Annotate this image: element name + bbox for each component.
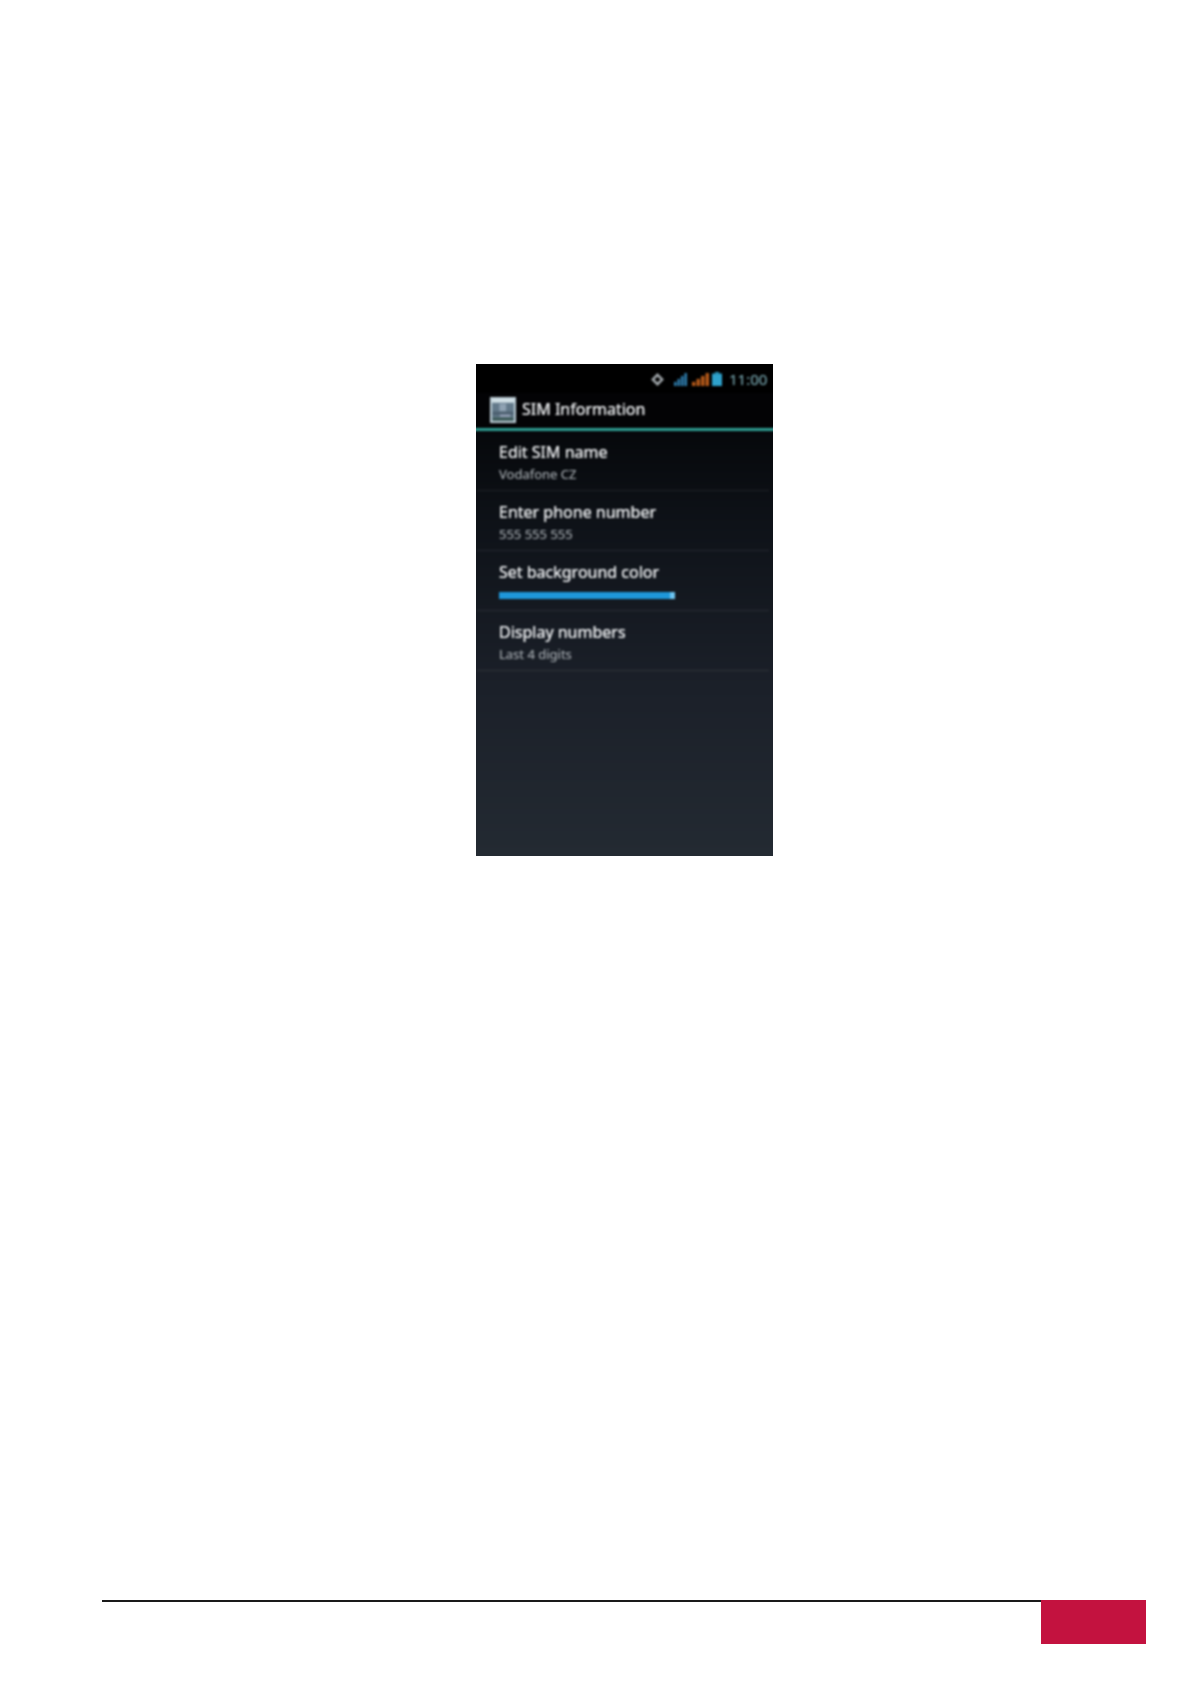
other: Auto rotate [652,374,663,385]
button[interactable]: Set background color [476,551,773,610]
staticText: Vodafone CZ [499,465,577,483]
other: Signal strength [692,373,709,386]
button[interactable]: Display numbers [476,611,773,670]
other: Battery [712,372,722,386]
staticText: SIM Information [522,398,646,420]
other: SIM Information app icon [490,397,516,423]
staticText: 11:00 [729,369,768,389]
staticText: Last 4 digits [499,645,572,663]
staticText: Display numbers [499,621,626,643]
button[interactable]: SIM Information app icon [476,393,773,428]
staticText: 555 555 555 [499,525,573,543]
staticText: Enter phone number [499,501,657,523]
staticText: Edit SIM name [499,441,608,463]
other: Signal strength [674,373,687,386]
button[interactable]: Enter phone number [476,491,773,550]
button[interactable]: Edit SIM name [476,431,773,490]
staticText: Set background color [499,561,660,583]
